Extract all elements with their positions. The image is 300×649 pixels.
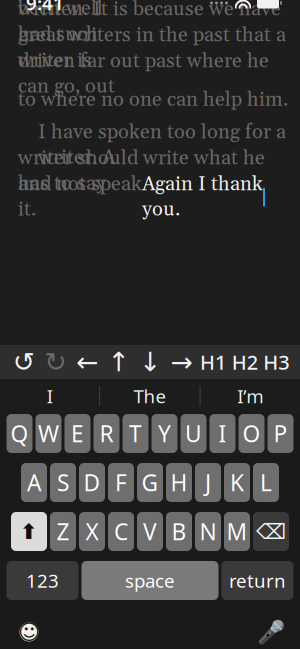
- staticText: 🎤: [257, 619, 285, 645]
- button[interactable]: U: [180, 414, 206, 453]
- staticText: O: [242, 418, 260, 448]
- button[interactable]: H1: [197, 345, 229, 379]
- staticText: A: [27, 467, 41, 497]
- staticText: Z: [56, 516, 69, 546]
- staticText: W: [38, 418, 59, 448]
- staticText: P: [273, 418, 287, 448]
- staticText: ⌫: [256, 519, 286, 544]
- staticText: write in another way what has been well: [18, 0, 287, 21]
- staticText: written. It is because we have had such: [18, 0, 281, 47]
- button[interactable]: L: [253, 463, 279, 502]
- staticText: 9:41: [26, 0, 64, 15]
- button[interactable]: Y: [151, 414, 177, 453]
- staticText: H2: [232, 349, 258, 375]
- button[interactable]: R: [93, 414, 119, 453]
- staticText: The: [133, 384, 166, 408]
- button[interactable]: C: [108, 512, 134, 551]
- button[interactable]: K: [224, 463, 250, 502]
- button[interactable]: X: [79, 512, 105, 551]
- button[interactable]: Move left: [71, 345, 103, 379]
- staticText: →: [171, 347, 193, 377]
- button[interactable]: T: [122, 414, 148, 453]
- button[interactable]: W: [35, 414, 61, 453]
- staticText: C: [114, 516, 128, 546]
- button[interactable]: A: [21, 463, 47, 502]
- button[interactable]: Shift: [11, 512, 47, 551]
- button[interactable]: I: [0, 379, 99, 413]
- staticText: V: [143, 516, 157, 546]
- staticText: ⬆: [20, 519, 38, 544]
- button[interactable]: D: [79, 463, 105, 502]
- button[interactable]: I’m: [201, 379, 300, 413]
- button[interactable]: Move down: [134, 345, 166, 379]
- button[interactable]: O: [238, 414, 264, 453]
- staticText: K: [230, 467, 244, 497]
- staticText: 123: [26, 568, 59, 593]
- button[interactable]: return: [221, 561, 293, 600]
- button[interactable]: Undo: [8, 345, 40, 379]
- button[interactable]: N: [195, 512, 221, 551]
- staticText: M: [226, 516, 247, 546]
- button[interactable]: Redo: [40, 345, 71, 379]
- staticText: ↑: [107, 347, 129, 377]
- staticText: B: [171, 516, 186, 546]
- staticText: T: [129, 418, 142, 448]
- staticText: Q: [10, 418, 28, 448]
- staticText: driven far out past where he can go, out: [18, 49, 269, 99]
- staticText: ☺: [18, 620, 40, 644]
- button[interactable]: The: [100, 379, 200, 413]
- staticText: J: [205, 467, 211, 497]
- button[interactable]: V: [137, 512, 163, 551]
- button[interactable]: P: [267, 414, 293, 453]
- staticText: X: [85, 516, 98, 546]
- staticText: F: [115, 467, 127, 497]
- button[interactable]: Dictation: [250, 617, 292, 647]
- button[interactable]: M: [224, 512, 250, 551]
- button[interactable]: Emoji: [8, 617, 50, 647]
- button[interactable]: 123: [6, 561, 78, 600]
- staticText: Y: [158, 418, 171, 448]
- staticText: return: [229, 568, 286, 593]
- button[interactable]: H2: [229, 345, 260, 379]
- button[interactable]: Move up: [103, 345, 134, 379]
- button[interactable]: E: [64, 414, 90, 453]
- staticText: I: [47, 384, 53, 408]
- staticText: writer should write what he has to say: [18, 146, 265, 196]
- button[interactable]: B: [166, 512, 192, 551]
- staticText: I’m: [237, 384, 263, 408]
- button[interactable]: F: [108, 463, 134, 502]
- staticText: R: [99, 418, 113, 448]
- button[interactable]: Q: [6, 414, 32, 453]
- staticText: to where no one can help him.: [18, 87, 288, 113]
- staticText: H: [170, 467, 187, 497]
- button[interactable]: I: [209, 414, 235, 453]
- staticText: S: [57, 467, 69, 497]
- button[interactable]: J: [195, 463, 221, 502]
- staticText: ↻: [44, 347, 66, 377]
- staticText: G: [141, 467, 158, 497]
- staticText: space: [125, 568, 175, 593]
- button[interactable]: G: [137, 463, 163, 502]
- staticText: L: [260, 467, 272, 497]
- staticText: E: [71, 418, 84, 448]
- staticText: I: [218, 418, 226, 448]
- staticText: ↺: [13, 347, 35, 377]
- button[interactable]: H: [166, 463, 192, 502]
- staticText: I have spoken too long for a writer. A: [38, 120, 286, 170]
- staticText: U: [185, 418, 202, 448]
- staticText: ←: [76, 347, 98, 377]
- staticText: H3: [263, 349, 289, 375]
- staticText: H1: [200, 349, 226, 375]
- staticText: N: [199, 516, 216, 546]
- staticText: great writers in the past that a writer …: [18, 23, 286, 73]
- button[interactable]: H3: [260, 345, 292, 379]
- button[interactable]: S: [50, 463, 76, 502]
- staticText: ↓: [139, 347, 161, 377]
- button[interactable]: Z: [50, 512, 76, 551]
- staticText: and not speak it.: [18, 172, 142, 222]
- staticText: D: [83, 467, 100, 497]
- button[interactable]: Move right: [166, 345, 197, 379]
- staticText: Again I thank you.: [142, 172, 263, 222]
- button[interactable]: Delete: [253, 512, 289, 551]
- button[interactable]: space: [81, 561, 218, 600]
